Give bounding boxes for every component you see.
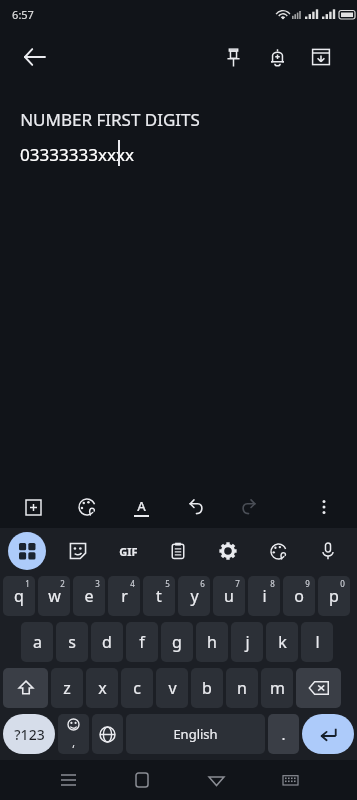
button[interactable]: j [231,622,263,662]
staticText: e [84,585,94,607]
button[interactable]: b [191,668,223,708]
staticText: 5 [165,578,170,589]
button[interactable]: Undo [178,490,212,524]
button[interactable]: pal [259,532,297,570]
button[interactable]: a [21,622,53,662]
staticText: 1 [25,578,30,589]
staticText: t [156,585,162,607]
button[interactable]: Text format [124,490,158,524]
staticText: 4 [130,578,135,589]
button[interactable]: v [156,668,188,708]
staticText: 6:57 [12,7,34,22]
button[interactable]: u [213,576,245,616]
button[interactable]: Language [92,714,123,754]
staticText: r [121,585,128,607]
button[interactable]: Palette [70,490,104,524]
staticText: d [102,631,112,653]
staticText: c [133,677,141,699]
staticText: q [14,585,24,607]
button[interactable]: . [268,714,299,754]
staticText: , [72,736,75,750]
button[interactable]: c [121,668,153,708]
button[interactable]: Notification [255,35,299,79]
staticText: m [270,677,285,699]
button[interactable]: Backspace [296,668,341,708]
staticText: p [329,585,339,607]
button[interactable]: g [161,622,193,662]
button[interactable]: q [3,576,35,616]
staticText: 2 [60,578,65,589]
staticText: w [48,585,61,607]
staticText: y [190,585,199,607]
button[interactable]: Emoji [58,714,89,754]
staticText: b [202,677,212,699]
button[interactable]: ?123 [3,714,55,754]
button[interactable]: o [283,576,315,616]
staticText: n [237,677,247,699]
staticText: 7 [235,578,240,589]
staticText: k [278,631,287,653]
button[interactable]: Hide keyboard [272,762,308,798]
button[interactable]: mic [309,532,347,570]
button[interactable]: English [126,714,265,754]
staticText: NUMBER FIRST DIGITS [20,108,200,131]
staticText: l [315,631,320,653]
staticText: 6 [200,578,205,589]
staticText: g [172,631,182,653]
staticText: 03333333xxxx [20,143,134,166]
button[interactable]: x [86,668,118,708]
staticText: English [173,725,218,743]
button[interactable]: Add [16,490,50,524]
button[interactable]: l [301,622,333,662]
button[interactable]: z [51,668,83,708]
button[interactable]: gif [109,532,147,570]
staticText: h [207,631,217,653]
button[interactable]: m [261,668,293,708]
button[interactable]: h [196,622,228,662]
button[interactable]: t [143,576,175,616]
button[interactable]: Enter [302,714,354,754]
staticText: a [33,631,42,653]
staticText: v [168,677,177,699]
button[interactable]: Archive [299,35,343,79]
button[interactable]: f [126,622,158,662]
staticText: j [245,631,250,653]
button[interactable]: d [91,622,123,662]
staticText: u [224,585,234,607]
staticText: A [137,497,146,515]
button[interactable]: Home [124,762,160,798]
button[interactable]: More options [307,490,341,524]
staticText: x [98,677,107,699]
staticText: 8 [270,578,275,589]
button[interactable]: i [248,576,280,616]
staticText: ?123 [14,725,45,744]
button[interactable]: w [38,576,70,616]
staticText: . [281,724,286,744]
staticText: s [68,631,76,653]
button[interactable]: Back [14,37,54,77]
staticText: o [294,585,304,607]
staticText: i [262,585,267,607]
staticText: GIF [119,544,138,559]
button[interactable]: k [266,622,298,662]
staticText: f [139,631,145,653]
button[interactable]: Shift [3,668,48,708]
button[interactable]: r [108,576,140,616]
button[interactable]: p [318,576,350,616]
button[interactable]: Redo [232,490,266,524]
button[interactable]: Keyboard apps [8,532,46,570]
staticText: 3 [95,578,100,589]
button[interactable]: Pin [211,35,255,79]
staticText: 0 [340,578,345,589]
button[interactable]: n [226,668,258,708]
button[interactable]: Back [198,762,234,798]
button[interactable]: e [73,576,105,616]
staticText: 9 [305,578,310,589]
button[interactable]: s [56,622,88,662]
button[interactable]: sticker [59,532,97,570]
button[interactable]: Recents [50,762,86,798]
staticText: z [63,677,71,699]
button[interactable]: y [178,576,210,616]
button[interactable]: clip [159,532,197,570]
button[interactable]: gear [209,532,247,570]
